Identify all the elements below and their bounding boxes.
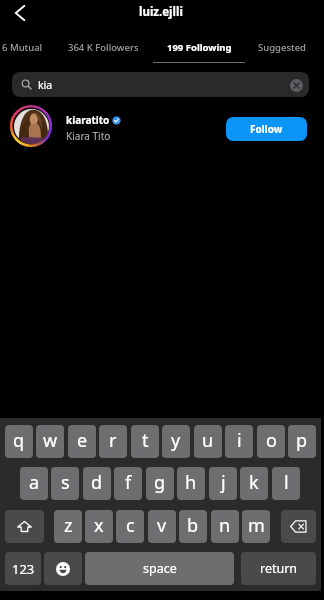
staticText: Follow [250,122,283,136]
staticText: d [91,470,103,495]
staticText: q [13,428,25,453]
button[interactable]: m [242,510,270,543]
staticText: z [64,513,73,538]
staticText: g [154,470,166,495]
button[interactable]: h [177,467,205,500]
button[interactable]: space [85,552,234,585]
button[interactable]: x [85,510,113,543]
staticText: a [29,470,40,495]
staticText: kia [38,78,53,92]
button[interactable]: kia [12,72,309,97]
staticText: luiz.ejlli [139,4,183,20]
staticText: Suggested [258,41,307,54]
staticText: n [219,513,231,538]
staticText: k [249,470,259,495]
staticText: 123 [12,560,35,578]
button[interactable]: 6 Mutual [0,30,51,63]
staticText: x [94,513,104,538]
staticText: o [266,428,277,453]
button[interactable]: a [20,467,48,500]
staticText: Kiara Tito [66,129,111,143]
staticText: y [171,428,181,453]
staticText: return [260,560,298,577]
button[interactable]: t [131,425,159,458]
staticText: t [142,428,149,453]
button[interactable]: e [68,425,96,458]
button[interactable]: u [194,425,222,458]
staticText: space [143,560,177,577]
button[interactable]: 199 Following [153,30,245,63]
button[interactable]: b [179,510,207,543]
staticText: f [125,470,132,495]
button[interactable]: c [116,510,144,543]
button[interactable]: Emoji [44,552,82,585]
button[interactable]: f [114,467,142,500]
staticText: r [109,428,117,453]
staticText: j [221,470,226,495]
staticText: 364 K Followers [68,41,139,54]
button[interactable]: Follow [226,117,307,141]
button[interactable]: s [51,467,79,500]
staticText: h [185,470,197,495]
button[interactable]: return [241,552,316,585]
staticText: p [296,428,308,453]
staticText: c [126,513,135,538]
button[interactable]: k [240,467,268,500]
button[interactable]: z [54,510,82,543]
button[interactable]: Clear text [289,78,303,92]
button[interactable]: 123 [5,552,41,585]
staticText: kiaratito [66,113,110,127]
staticText: w [43,428,58,453]
button[interactable]: i [225,425,253,458]
staticText: m [248,513,265,538]
button[interactable]: y [162,425,190,458]
button[interactable]: w [36,425,64,458]
button[interactable]: p [288,425,316,458]
button[interactable]: n [211,510,239,543]
button[interactable]: j [209,467,237,500]
button[interactable]: 364 K Followers [54,30,153,63]
button[interactable]: q [5,425,33,458]
button[interactable]: r [99,425,127,458]
staticText: b [187,513,199,538]
button[interactable]: Backspace [281,510,316,543]
staticText: v [157,513,167,538]
button[interactable]: o [257,425,285,458]
button[interactable]: g [146,467,174,500]
staticText: 6 Mutual [2,41,43,54]
button[interactable]: Shift [5,510,44,543]
staticText: l [284,470,289,495]
staticText: s [61,470,70,495]
button[interactable]: Suggested [245,30,319,63]
staticText: 199 Following [167,41,232,54]
button[interactable]: v [148,510,176,543]
staticText: i [237,428,242,453]
staticText: e [77,428,88,453]
staticText: u [202,428,214,453]
button[interactable]: l [272,467,300,500]
button[interactable]: kiaratito [0,102,321,154]
button[interactable]: Back [7,0,32,25]
button[interactable]: d [83,467,111,500]
